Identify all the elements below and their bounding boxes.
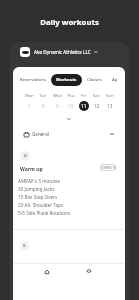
staticText: 5/5 Side Plank Rotations xyxy=(18,210,71,216)
staticText: Fri xyxy=(81,93,86,99)
button[interactable]: Workouts xyxy=(51,74,82,86)
staticText: Warm up xyxy=(20,166,43,173)
button[interactable]: Reservations xyxy=(15,74,51,86)
button[interactable]: Wed xyxy=(50,93,64,111)
staticText: Sun xyxy=(106,93,114,99)
button[interactable]: COMPLETE xyxy=(100,164,116,171)
button[interactable]: Ap xyxy=(107,74,123,86)
staticText: AMRAP x 5 minutes xyxy=(18,178,60,184)
staticText: 15 Box Step Overs xyxy=(18,194,58,200)
staticText: Classes xyxy=(87,77,102,83)
staticText: Reservations xyxy=(20,77,46,83)
staticText: Wed xyxy=(53,93,62,99)
button[interactable]: General xyxy=(13,127,125,141)
button[interactable]: Fri xyxy=(77,93,90,111)
staticText: Daily workouts xyxy=(0,17,139,28)
staticText: General xyxy=(32,131,49,137)
staticText: 12 xyxy=(94,103,100,109)
staticText: Ap xyxy=(112,77,118,83)
staticText: 13 xyxy=(107,103,113,109)
button[interactable]: Classes xyxy=(82,74,107,86)
staticText: Thu xyxy=(67,93,75,99)
staticText: COMPLETE xyxy=(101,166,116,170)
staticText: 20 Alt. Shoulder Taps xyxy=(18,202,64,208)
staticText: Ako Dynamic Athletics LLC xyxy=(34,49,91,55)
button[interactable]: Home xyxy=(41,266,53,278)
staticText: 30 Jumping Jacks xyxy=(18,186,55,192)
staticText: 7 xyxy=(28,103,31,109)
staticText: 9 xyxy=(56,103,59,109)
staticText: 8 xyxy=(42,103,45,109)
button[interactable]: Sun xyxy=(103,93,116,111)
button[interactable]: Tue xyxy=(36,93,50,111)
staticText: A xyxy=(24,153,27,159)
staticText: 11 xyxy=(81,103,87,109)
button[interactable]: Ako Dynamic Athletics LLC xyxy=(20,47,98,57)
staticText: Workouts xyxy=(56,77,77,83)
button[interactable]: Thu xyxy=(64,93,77,111)
staticText: Mon xyxy=(25,93,34,99)
button[interactable]: Mon xyxy=(22,93,36,111)
staticText: Tue xyxy=(39,93,47,99)
staticText: B xyxy=(23,243,26,248)
staticText: Sat xyxy=(93,93,100,99)
button[interactable]: Sat xyxy=(90,93,103,111)
staticText: 10 xyxy=(68,103,74,109)
button[interactable]: Workouts xyxy=(83,265,95,277)
